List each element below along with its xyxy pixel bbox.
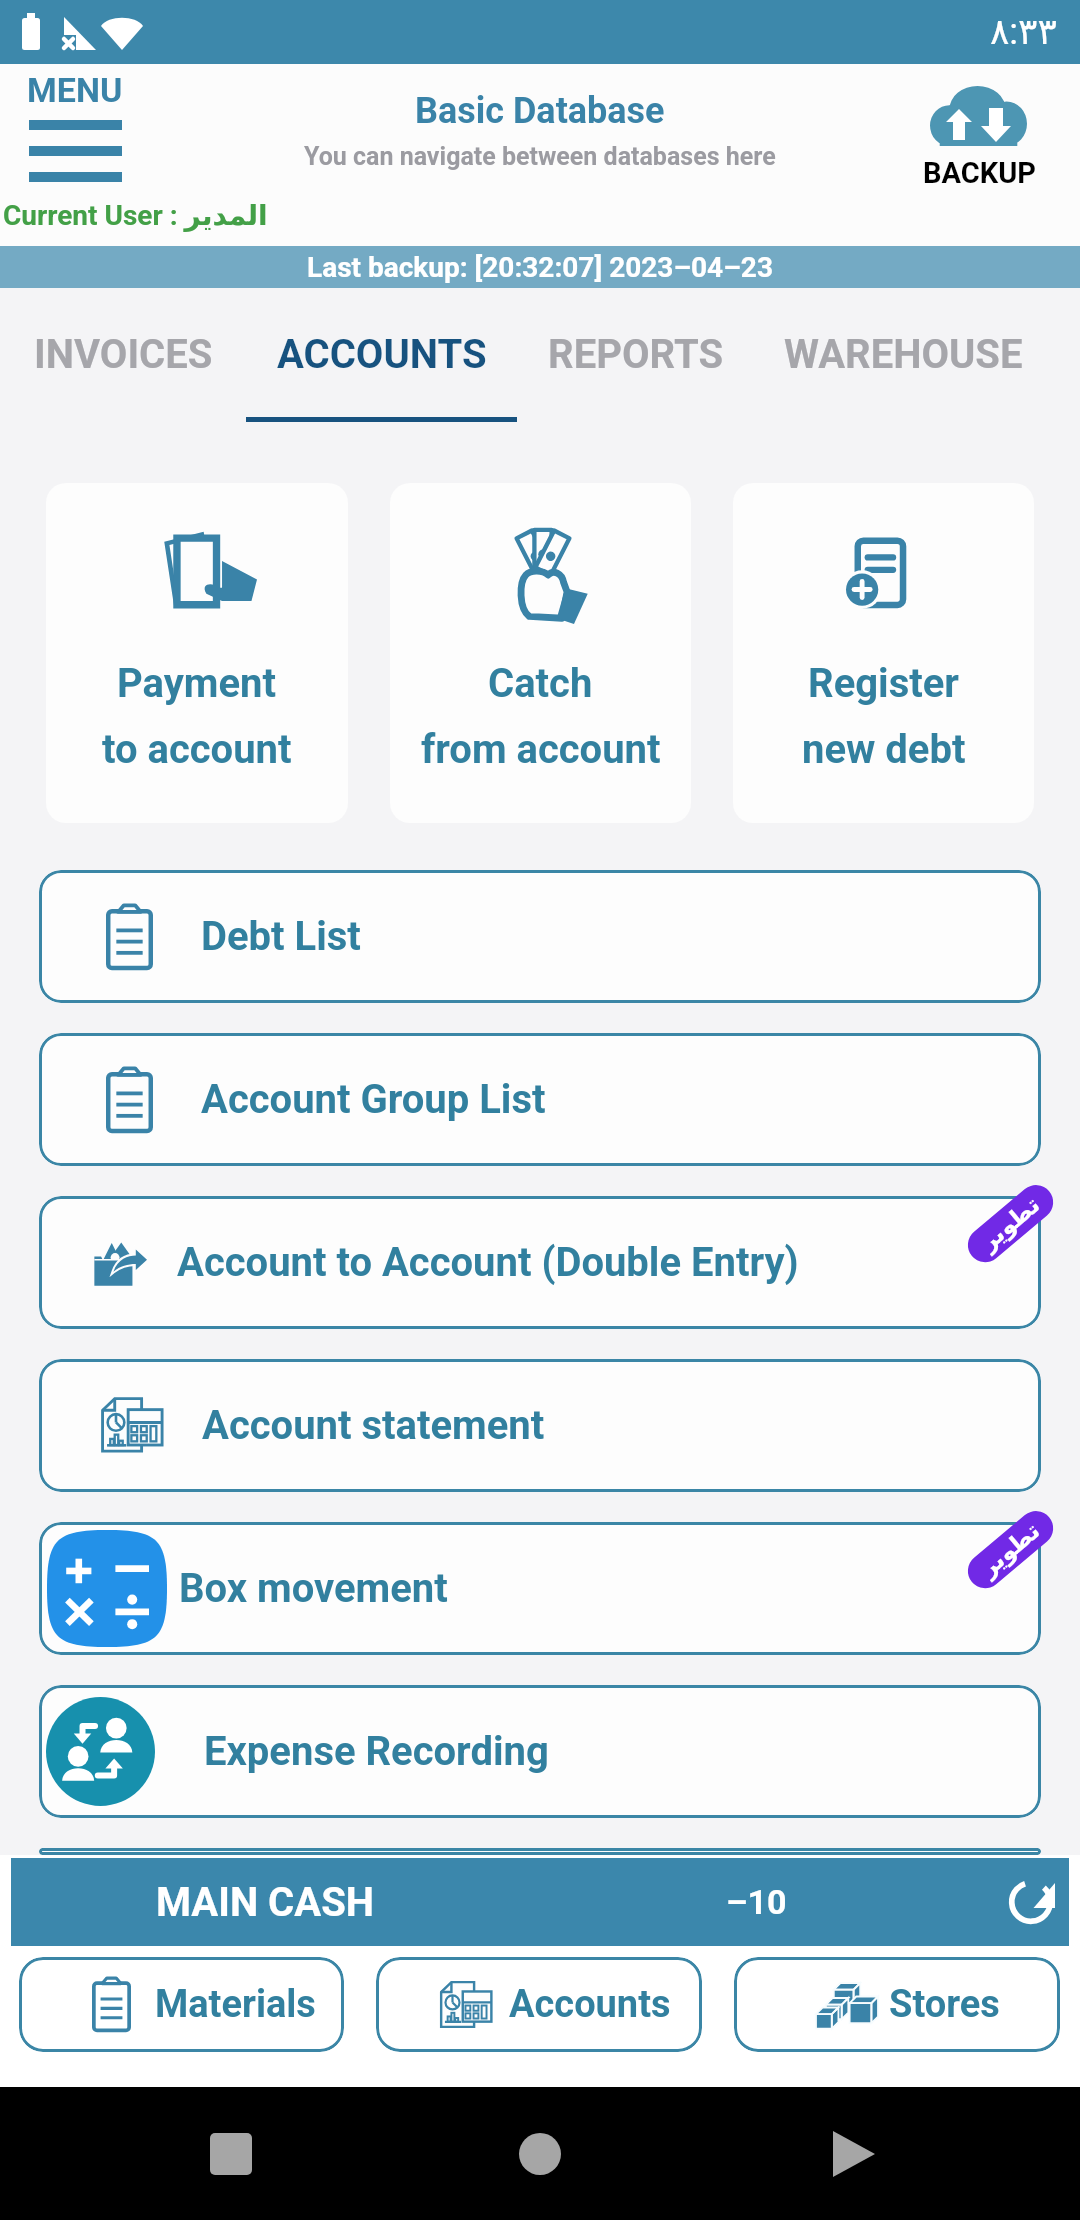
staticText: تطوير — [975, 1517, 1046, 1582]
button[interactable]: INVOICES — [2, 288, 245, 430]
staticText: Box movement — [179, 1565, 448, 1612]
staticText: new debt — [802, 726, 966, 773]
staticText: Materials — [155, 1982, 316, 2027]
button[interactable]: WAREHOUSE — [753, 288, 1054, 430]
button[interactable]: Home — [519, 2133, 561, 2175]
staticText: Account to Account (Double Entry) — [177, 1239, 799, 1286]
staticText: Expense Recording — [204, 1728, 549, 1775]
staticText: to account — [102, 726, 292, 773]
staticText: MAIN CASH — [156, 1879, 375, 1926]
staticText: REPORTS — [548, 331, 724, 378]
staticText: ACCOUNTS — [277, 331, 487, 378]
button[interactable]: Register — [733, 483, 1034, 823]
button[interactable]: Expense Recording — [39, 1685, 1041, 1818]
button[interactable]: Back — [210, 2133, 252, 2175]
button[interactable]: Catch — [390, 483, 691, 823]
staticText: Current User : المدير — [3, 199, 268, 232]
staticText: Account Group List — [201, 1076, 546, 1123]
staticText: Last backup: [20:32:07] 2023–04–23 — [307, 251, 773, 284]
staticText: Accounts — [509, 1982, 671, 2027]
button[interactable]: Payment — [46, 483, 348, 823]
staticText: Debt List — [201, 913, 361, 960]
staticText: MENU — [27, 70, 123, 110]
staticText: BACKUP — [923, 156, 1035, 190]
staticText: INVOICES — [34, 331, 213, 378]
staticText: from account — [421, 726, 661, 773]
button[interactable]: REPORTS — [518, 288, 753, 430]
button[interactable]: Materials — [19, 1957, 344, 2052]
button[interactable]: Account statement — [39, 1359, 1041, 1492]
staticText: ٨:٣٣ — [990, 11, 1057, 53]
button[interactable]: Refresh — [1006, 1877, 1056, 1927]
staticText: WAREHOUSE — [784, 331, 1023, 378]
button[interactable]: Menu — [27, 68, 127, 194]
button[interactable] — [39, 1848, 1041, 1855]
button[interactable]: Account to Account (Double Entry) — [39, 1196, 1041, 1329]
button[interactable]: Account Group List — [39, 1033, 1041, 1166]
button[interactable]: Box movement — [39, 1522, 1041, 1655]
staticText: –10 — [726, 1882, 787, 1922]
staticText: تطوير — [975, 1191, 1046, 1256]
staticText: Catch — [488, 660, 593, 707]
staticText: You can navigate between databases here — [304, 142, 776, 171]
button[interactable]: Backup — [922, 80, 1034, 190]
button[interactable]: ACCOUNTS — [245, 288, 518, 430]
button[interactable]: MAIN CASH — [11, 1858, 1069, 1946]
button[interactable]: Stores — [734, 1957, 1060, 2052]
staticText: Register — [808, 660, 959, 707]
staticText: Basic Database — [415, 90, 665, 132]
button[interactable]: Recents — [833, 2131, 875, 2177]
staticText: Account statement — [202, 1402, 545, 1449]
staticText: Stores — [889, 1982, 1000, 2027]
staticText: Payment — [117, 660, 277, 707]
button[interactable]: Accounts — [376, 1957, 702, 2052]
button[interactable]: Debt List — [39, 870, 1041, 1003]
